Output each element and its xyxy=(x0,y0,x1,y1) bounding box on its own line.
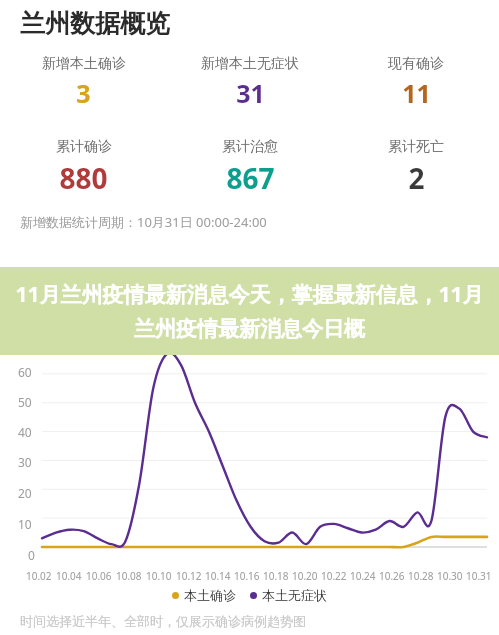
staticText: 新增 xyxy=(455,289,481,305)
staticText: 兰州数据概览 xyxy=(20,8,170,39)
staticText: 11 xyxy=(402,76,431,110)
staticText: 10.22 xyxy=(321,569,347,583)
staticText: 10.26 xyxy=(379,569,405,583)
staticText: 10.24 xyxy=(350,569,376,583)
button[interactable]: 累计确诊 xyxy=(0,138,167,197)
staticText: 10.31 xyxy=(466,569,492,583)
staticText: 10.12 xyxy=(176,569,202,583)
staticText: 新增数据统计周期：10月31日 00:00-24:00 xyxy=(20,213,267,231)
staticText: 本土确诊 xyxy=(184,587,236,603)
button[interactable]: 兰州数据概览 xyxy=(20,8,170,39)
button[interactable]: 本土无症状 xyxy=(250,587,327,603)
staticText: 50 xyxy=(18,394,32,410)
staticText: 880 xyxy=(59,159,108,197)
button[interactable]: 累计治愈 xyxy=(167,138,333,197)
button[interactable]: 本土确诊 xyxy=(172,587,236,603)
staticText: 新增本土无症状 xyxy=(201,55,299,73)
staticText: 本土无症状 xyxy=(262,587,327,603)
staticText: 10.28 xyxy=(408,569,434,583)
staticText: 3 xyxy=(76,76,91,110)
button[interactable]: 新增 xyxy=(455,289,481,305)
staticText: 10.08 xyxy=(116,569,142,583)
button[interactable]: 新增本土确诊 xyxy=(0,55,167,110)
staticText: 现有确诊 xyxy=(388,55,444,73)
staticText: 40 xyxy=(18,424,32,440)
staticText: 时间选择近半年、全部时，仅展示确诊病例趋势图 xyxy=(20,613,306,629)
button[interactable]: 新增本土无症状 xyxy=(167,55,333,110)
staticText: 2 xyxy=(408,159,425,197)
button[interactable]: 30 天 xyxy=(374,287,411,307)
staticText: 11月兰州疫情最新消息今天，掌握最新信息，11月兰州疫情最新消息今日概 xyxy=(6,280,493,343)
staticText: 31 xyxy=(236,76,265,110)
staticText: 0 xyxy=(28,547,35,563)
staticText: 10.18 xyxy=(263,569,289,583)
staticText: 10.10 xyxy=(146,569,172,583)
staticText: 累计死亡 xyxy=(388,138,444,156)
button[interactable]: 现有确诊 xyxy=(333,55,499,110)
staticText: 10 xyxy=(18,516,32,532)
staticText: 疫情趋势 xyxy=(18,284,102,310)
staticText: 10.16 xyxy=(234,569,260,583)
staticText: 10.04 xyxy=(56,569,82,583)
button[interactable]: 累计死亡 xyxy=(333,138,499,197)
staticText: 60 xyxy=(18,364,32,380)
staticText: 10.06 xyxy=(86,569,112,583)
staticText: 867 xyxy=(226,159,275,197)
staticText: 10.02 xyxy=(26,569,52,583)
staticText: 30 天 xyxy=(374,287,411,307)
staticText: 累计治愈 xyxy=(222,138,278,156)
staticText: 20 xyxy=(18,485,32,501)
staticText: 累计确诊 xyxy=(56,138,112,156)
staticText: 10.14 xyxy=(205,569,231,583)
staticText: 10.20 xyxy=(292,569,318,583)
staticText: 10.30 xyxy=(437,569,463,583)
staticText: 新增本土确诊 xyxy=(42,55,126,73)
staticText: 30 xyxy=(18,454,32,470)
